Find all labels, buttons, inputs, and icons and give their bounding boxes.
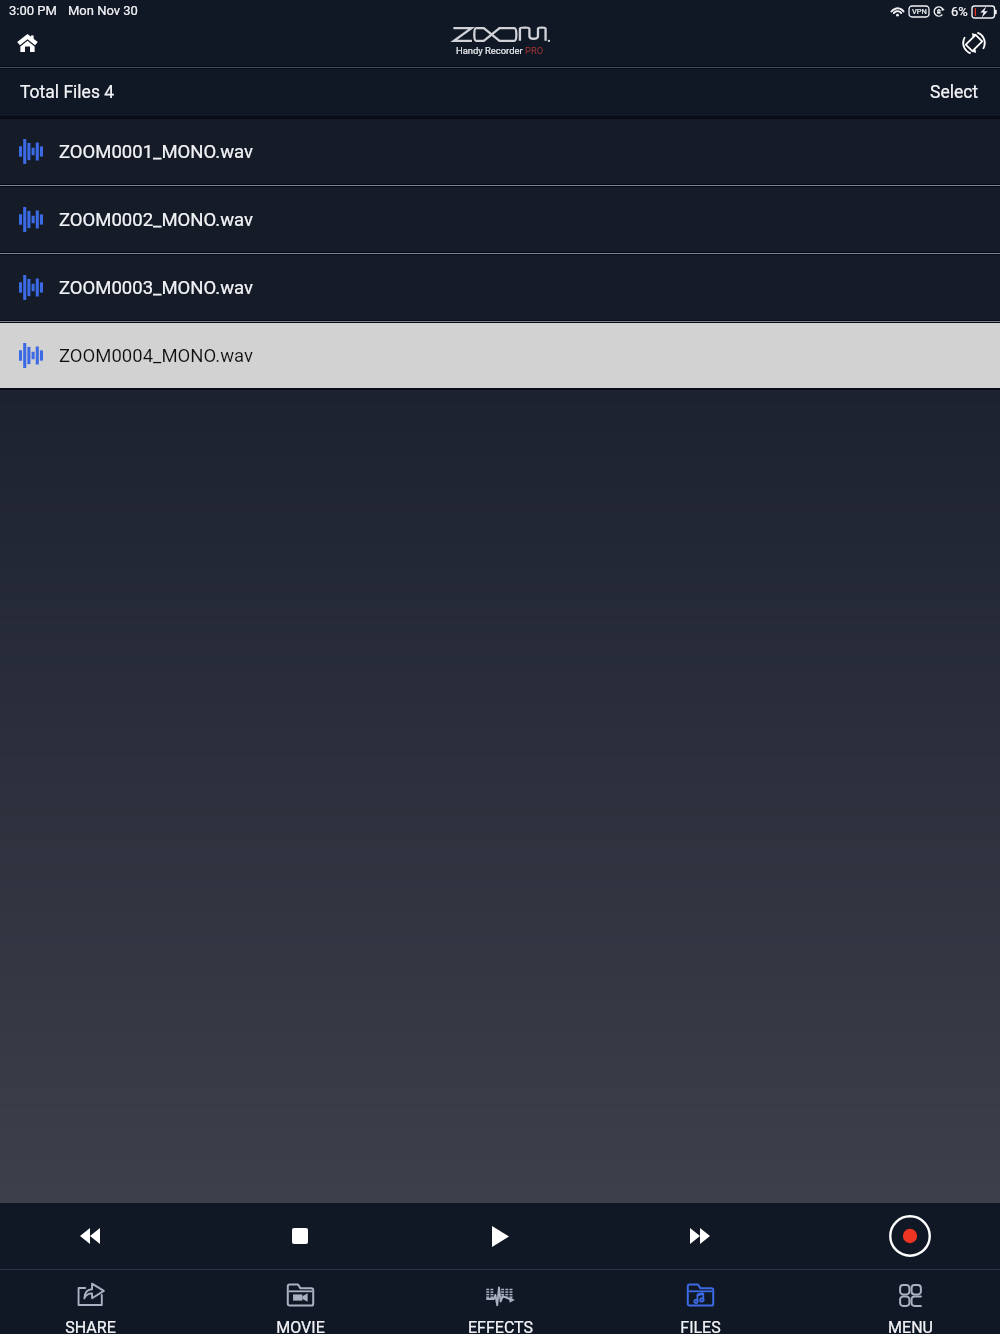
staticText: 6% <box>951 4 968 19</box>
staticText: EFFECTS <box>468 1318 533 1334</box>
button[interactable]: Select <box>906 70 1000 115</box>
staticText: SHARE <box>65 1318 116 1334</box>
button[interactable]: MENU <box>860 1270 960 1334</box>
button[interactable]: Rotate screen <box>956 25 991 60</box>
button[interactable]: SHARE <box>40 1270 140 1334</box>
button[interactable]: MOVIE <box>250 1270 350 1334</box>
button[interactable]: Fast forward <box>666 1203 734 1269</box>
staticText: VPN <box>912 7 927 16</box>
button[interactable]: Home <box>10 24 45 59</box>
staticText: Mon Nov 30 <box>68 3 138 18</box>
staticText: 3:00 PM <box>9 3 57 18</box>
staticText: MOVIE <box>276 1318 325 1334</box>
button[interactable]: Play <box>466 1203 534 1269</box>
button[interactable]: EFFECTS <box>450 1270 550 1334</box>
button[interactable]: ZOOM0002_MONO.wav <box>0 187 1000 252</box>
staticText: FILES <box>680 1318 721 1334</box>
button[interactable]: FILES <box>650 1270 750 1334</box>
staticText: PRO <box>525 45 544 56</box>
button[interactable]: Record <box>876 1203 944 1269</box>
button[interactable]: ZOOM0004_MONO.wav <box>0 323 1000 388</box>
staticText: ZOOM0001_MONO.wav <box>59 141 253 163</box>
staticText: ZOOM0004_MONO.wav <box>59 345 253 367</box>
staticText: ZOOM0002_MONO.wav <box>59 209 253 231</box>
button[interactable]: Rewind <box>56 1203 124 1269</box>
button[interactable]: ZOOM0003_MONO.wav <box>0 255 1000 320</box>
staticText: Total Files 4 <box>20 82 115 103</box>
staticText: ZOOM0003_MONO.wav <box>59 277 253 299</box>
staticText: Select <box>930 82 979 103</box>
button[interactable]: Stop <box>266 1203 334 1269</box>
staticText: Handy Recorder <box>456 45 525 56</box>
staticText: MENU <box>888 1318 933 1334</box>
button[interactable]: ZOOM0001_MONO.wav <box>0 119 1000 184</box>
